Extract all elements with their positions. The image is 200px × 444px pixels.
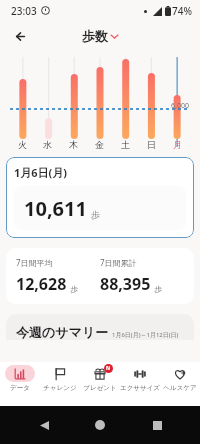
staticText: 88,395	[100, 273, 151, 295]
staticText: N	[106, 365, 111, 372]
staticText: 12,628	[16, 273, 67, 295]
staticText: 1月6日(月)	[14, 165, 68, 180]
staticText: 10,611	[24, 195, 87, 222]
button[interactable]: 歩数	[78, 26, 122, 46]
staticText: 今週のサマリー	[16, 324, 109, 340]
staticText: 水	[43, 139, 52, 150]
staticText: 歩	[91, 209, 100, 220]
button[interactable]: エクササイズ	[120, 362, 160, 406]
button[interactable]: 7日間平均	[6, 248, 194, 304]
staticText: 金	[95, 139, 104, 150]
staticText: 74%	[172, 4, 192, 18]
staticText: 7日間平均	[16, 257, 53, 268]
staticText: 6,000	[171, 101, 189, 111]
staticText: 歩数	[82, 28, 108, 44]
staticText: エクササイズ	[120, 384, 160, 392]
button[interactable]: Home	[87, 412, 113, 438]
staticText: 土	[121, 139, 130, 150]
staticText: 日	[147, 139, 156, 150]
button[interactable]: Recent apps	[144, 412, 170, 438]
button[interactable]: ヘルスケア	[160, 362, 200, 406]
staticText: プレゼント	[83, 384, 117, 392]
button[interactable]: 1月6日(月)	[6, 157, 194, 238]
button[interactable]: 今週のサマリー	[6, 314, 194, 340]
staticText: 月	[173, 139, 182, 150]
staticText: 木	[69, 139, 78, 150]
button[interactable]: チャレンジ	[40, 362, 80, 406]
staticText: 23:03	[11, 4, 37, 18]
staticText: 歩	[70, 284, 78, 294]
staticText: チャレンジ	[43, 384, 77, 392]
staticText: 火	[18, 139, 27, 150]
staticText: 1月6日(月)～1月12日(日)	[112, 331, 179, 339]
staticText: 7日間累計	[100, 257, 137, 268]
button[interactable]: Back	[31, 412, 57, 438]
staticText: 歩	[154, 284, 162, 294]
button[interactable]: データ	[0, 362, 40, 406]
staticText: ヘルスケア	[163, 384, 197, 392]
button[interactable]: Back	[6, 23, 32, 49]
button[interactable]: N	[80, 362, 120, 406]
staticText: データ	[10, 384, 30, 392]
